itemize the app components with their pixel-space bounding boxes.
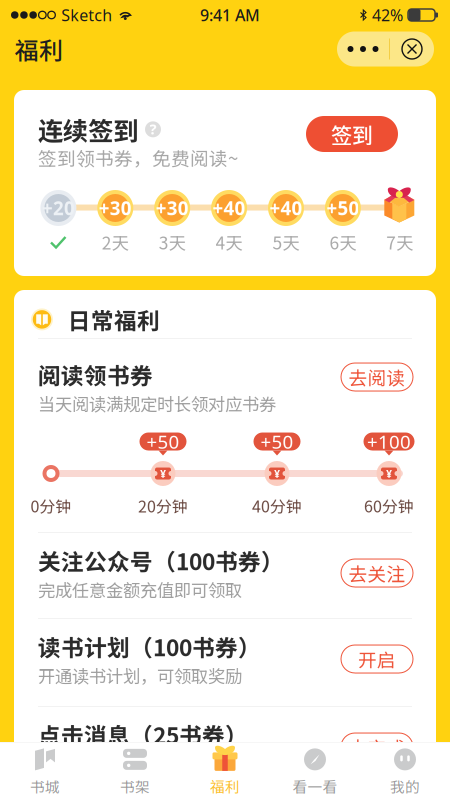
button[interactable]: 去完成 <box>341 733 413 761</box>
button[interactable]: 书架 <box>90 744 180 800</box>
staticText: 7天 <box>386 229 413 255</box>
staticText: 我的 <box>390 775 420 797</box>
button[interactable]: 读书计划（100书券） <box>14 619 436 707</box>
staticText: ¥ <box>160 466 166 481</box>
staticText: 福利 <box>15 32 63 66</box>
staticText: 读书计划（100书券） <box>38 630 261 663</box>
staticText: +20 <box>42 195 75 221</box>
staticText: 2天 <box>102 229 129 255</box>
staticText: 阅读领书券 <box>38 358 153 391</box>
staticText: 关注公众号（100书券） <box>38 544 284 577</box>
staticText: 40分钟 <box>252 494 302 517</box>
staticText: 0分钟 <box>30 494 71 517</box>
staticText: 点击消息即可领取书券 <box>38 751 208 776</box>
staticText: 完成任意金额充值即可领取 <box>38 577 242 602</box>
staticText: 20分钟 <box>138 494 188 517</box>
staticText: +30 <box>99 195 132 221</box>
staticText: 福利 <box>210 775 240 797</box>
staticText: 签到领书券，免费阅读~ <box>38 144 238 171</box>
staticText: +50 <box>146 429 179 454</box>
button[interactable]: More <box>337 31 389 66</box>
staticText: 去阅读 <box>348 363 405 390</box>
button[interactable]: 书城 <box>0 744 90 800</box>
staticText: 去关注 <box>348 559 405 586</box>
staticText: 9:41 AM <box>200 4 260 26</box>
staticText: ¥ <box>274 466 280 481</box>
staticText: 日常福利 <box>68 303 160 336</box>
staticText: ? <box>149 119 156 139</box>
staticText: 书架 <box>120 775 150 797</box>
button[interactable]: 福利 <box>180 744 270 800</box>
staticText: 书城 <box>30 775 60 797</box>
staticText: +30 <box>156 195 189 221</box>
staticText: 60分钟 <box>364 494 414 517</box>
button[interactable]: 去关注 <box>341 559 413 587</box>
staticText: +100 <box>367 429 411 454</box>
staticText: 5天 <box>272 229 299 255</box>
staticText: +40 <box>213 195 246 221</box>
staticText: +50 <box>260 429 293 454</box>
staticText: 42% <box>372 4 403 26</box>
button[interactable]: 去阅读 <box>341 363 413 391</box>
staticText: 点击消息（25书券） <box>38 718 248 751</box>
staticText: 4天 <box>216 229 243 255</box>
staticText: Sketch <box>61 4 112 26</box>
button[interactable]: 点击消息（25书券） <box>14 707 436 793</box>
staticText: 看一看 <box>292 775 337 797</box>
staticText: 签到 <box>331 119 373 149</box>
button[interactable]: 看一看 <box>270 744 360 800</box>
staticText: 3天 <box>159 229 186 255</box>
staticText: +40 <box>269 195 302 221</box>
staticText: +50 <box>326 195 359 221</box>
button[interactable]: 我的 <box>360 744 450 800</box>
staticText: 开通读书计划，可领取奖励 <box>38 663 242 688</box>
staticText: 连续签到 <box>38 111 138 148</box>
staticText: 当天阅读满规定时长领对应书券 <box>38 391 276 416</box>
staticText: 开启 <box>358 645 396 672</box>
staticText: 6天 <box>329 229 356 255</box>
staticText: 去完成 <box>348 733 405 760</box>
button[interactable]: 签到 <box>306 116 398 152</box>
button[interactable]: 关注公众号（100书券） <box>14 533 436 619</box>
button[interactable]: 开启 <box>341 645 413 673</box>
staticText: ¥ <box>386 466 392 481</box>
button[interactable]: Close <box>390 31 434 66</box>
